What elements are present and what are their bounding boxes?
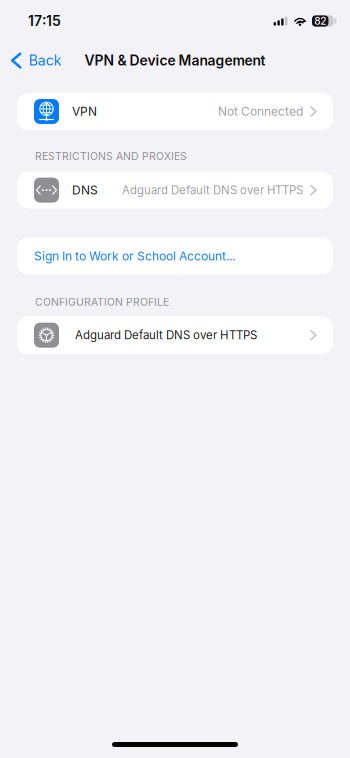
button[interactable]: VPN <box>17 93 333 130</box>
staticText: VPN <box>72 104 97 119</box>
staticText: 82 <box>314 15 326 27</box>
button[interactable]: Sign In to Work or School Account... <box>17 238 333 275</box>
staticText: CONFIGURATION PROFILE <box>35 296 169 308</box>
staticText: 17:15 <box>28 12 61 29</box>
staticText: Adguard Default DNS over HTTPS <box>75 328 257 342</box>
staticText: Back <box>29 52 62 69</box>
staticText: Not Connected <box>218 104 303 119</box>
staticText: VPN & Device Management <box>84 52 265 69</box>
staticText: Adguard Default DNS over HTTPS <box>122 183 303 197</box>
staticText: RESTRICTIONS AND PROXIES <box>35 150 187 163</box>
button[interactable]: DNS <box>17 172 333 209</box>
staticText: DNS <box>72 183 98 197</box>
button[interactable]: Adguard Default DNS over HTTPS <box>17 316 333 354</box>
staticText: Sign In to Work or School Account... <box>34 249 235 263</box>
button[interactable]: Back <box>0 45 69 76</box>
